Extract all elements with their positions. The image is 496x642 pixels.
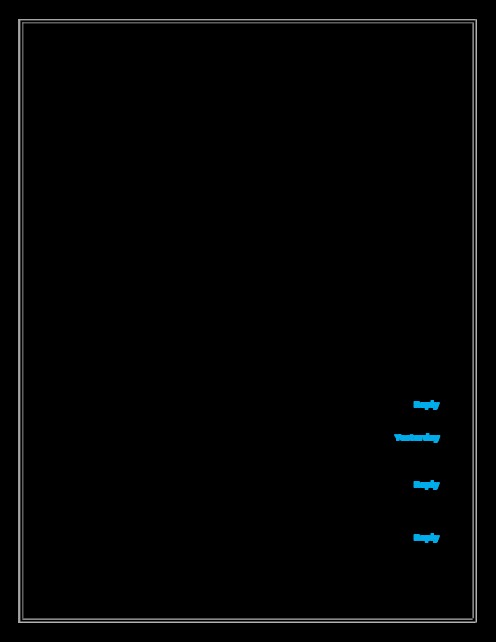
button[interactable]: Reply — [413, 530, 438, 542]
staticText: Reply — [413, 398, 438, 410]
staticText: Reply — [415, 477, 440, 489]
other: Screen frame — [0, 0, 496, 642]
staticText: Reply — [415, 531, 440, 543]
staticText: Reply — [415, 530, 440, 542]
staticText: Reply — [414, 530, 439, 542]
staticText: Yesterday — [395, 431, 440, 443]
staticText: Reply — [413, 397, 438, 409]
staticText: Reply — [413, 478, 438, 490]
staticText: Reply — [414, 398, 439, 410]
staticText: Reply — [413, 530, 438, 542]
staticText: Yesterday — [396, 430, 441, 442]
button[interactable]: Yesterday — [394, 430, 439, 442]
staticText: Reply — [414, 397, 439, 409]
staticText: Yesterday — [396, 431, 441, 443]
button[interactable]: Reply — [413, 477, 438, 489]
staticText: Yesterday — [394, 430, 439, 442]
staticText: Reply — [413, 531, 438, 543]
staticText: Reply — [415, 398, 440, 410]
staticText: Reply — [414, 531, 439, 543]
staticText: Reply — [414, 477, 439, 489]
staticText: Yesterday — [395, 430, 440, 442]
button[interactable]: Reply — [413, 397, 438, 409]
staticText: Reply — [413, 477, 438, 489]
staticText: Reply — [415, 397, 440, 409]
staticText: Reply — [414, 478, 439, 490]
staticText: Yesterday — [394, 431, 439, 443]
staticText: Reply — [415, 478, 440, 490]
